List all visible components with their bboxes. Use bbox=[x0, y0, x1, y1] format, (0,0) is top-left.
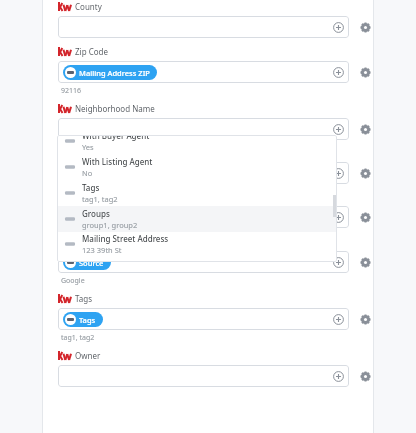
staticText: Tags bbox=[79, 315, 96, 325]
staticText: With Buyer Agent bbox=[82, 135, 150, 141]
other: Add value bbox=[333, 212, 344, 223]
button[interactable]: Add value bbox=[58, 162, 349, 184]
other: Add value bbox=[333, 22, 344, 33]
button[interactable]: Mailing Address ZIP bbox=[63, 65, 157, 80]
button[interactable]: Source bbox=[58, 251, 349, 273]
staticText: Groups bbox=[82, 208, 110, 219]
staticText: Mailing Address ZIP bbox=[79, 68, 150, 78]
staticText: No bbox=[82, 168, 93, 178]
staticText: Owner bbox=[75, 350, 101, 361]
other: Add value bbox=[333, 168, 344, 179]
staticText: tag1, tag2 bbox=[82, 194, 118, 204]
other: Field settings bbox=[360, 314, 371, 325]
staticText: group1, group2 bbox=[82, 220, 138, 230]
button[interactable]: Add value bbox=[58, 206, 349, 228]
button[interactable]: Field settings bbox=[357, 254, 373, 270]
staticText: With Listing Agent bbox=[82, 156, 153, 167]
button[interactable]: Mailing Street Address bbox=[57, 232, 337, 255]
staticText: Tags bbox=[82, 182, 100, 193]
other: Add value bbox=[333, 371, 344, 382]
other: Field settings bbox=[360, 212, 371, 223]
other: Add value bbox=[333, 67, 344, 78]
button[interactable]: Tags bbox=[63, 312, 103, 327]
staticText: County bbox=[75, 1, 102, 12]
button[interactable]: Tags bbox=[57, 180, 337, 206]
button[interactable]: Field settings bbox=[357, 165, 373, 181]
staticText: Mailing Street Address bbox=[82, 233, 169, 244]
staticText: Zip Code bbox=[75, 46, 108, 57]
other: Add value bbox=[333, 314, 344, 325]
other: Add value bbox=[333, 257, 344, 268]
button[interactable]: Field settings bbox=[357, 209, 373, 225]
button[interactable]: Field settings bbox=[357, 368, 373, 384]
button[interactable]: Groups bbox=[57, 206, 337, 232]
staticText: tag1, tag2 bbox=[61, 333, 95, 343]
button[interactable]: With Buyer Agent bbox=[57, 135, 337, 154]
button[interactable]: Field settings bbox=[357, 311, 373, 327]
button[interactable]: Field settings bbox=[357, 64, 373, 80]
staticText: Source bbox=[75, 236, 101, 247]
staticText: Google bbox=[61, 276, 85, 286]
other: Field settings bbox=[360, 124, 371, 135]
button[interactable]: Add value bbox=[58, 118, 349, 140]
button[interactable]: Add value bbox=[58, 365, 349, 387]
staticText: Source bbox=[79, 258, 104, 268]
other: Field settings bbox=[360, 67, 371, 78]
button[interactable]: Field settings bbox=[357, 19, 373, 35]
other: Field settings bbox=[360, 257, 371, 268]
button[interactable]: Tags bbox=[58, 308, 349, 330]
button[interactable]: Add value bbox=[58, 16, 349, 38]
staticText: Neighborhood Name bbox=[75, 103, 155, 114]
button[interactable]: Mailing Address ZIP bbox=[58, 61, 349, 83]
staticText: Yes bbox=[82, 142, 94, 152]
other: Add value bbox=[333, 124, 344, 135]
other: Field settings bbox=[360, 168, 371, 179]
button[interactable]: Field settings bbox=[357, 121, 373, 137]
staticText: Tags bbox=[75, 293, 93, 304]
staticText: 92116 bbox=[61, 86, 82, 96]
other: Field settings bbox=[360, 371, 371, 382]
staticText: 123 39th St bbox=[82, 245, 122, 255]
other: Field settings bbox=[360, 22, 371, 33]
button[interactable]: Source bbox=[63, 255, 111, 270]
button[interactable]: With Listing Agent bbox=[57, 154, 337, 180]
